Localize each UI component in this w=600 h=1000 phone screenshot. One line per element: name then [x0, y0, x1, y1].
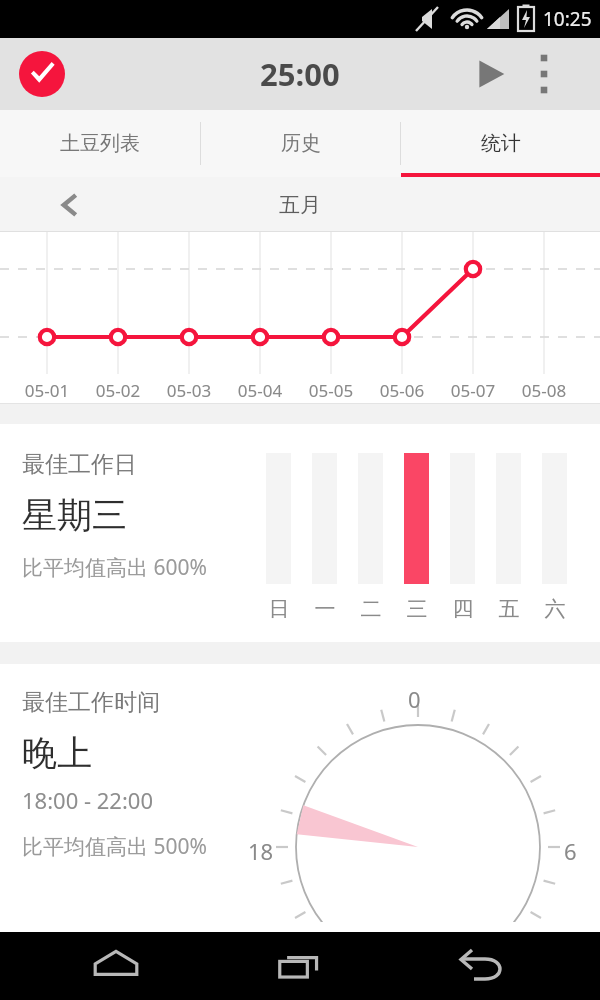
button[interactable]: 统计 — [401, 110, 600, 177]
staticText: 18:00 - 22:00 — [22, 785, 153, 815]
staticText: 05-04 — [230, 379, 290, 402]
staticText: 历史 — [281, 131, 321, 156]
button[interactable]: Recent apps — [272, 938, 328, 994]
staticText: 星期三 — [22, 493, 127, 537]
staticText: 六 — [533, 596, 577, 622]
staticText: 一 — [303, 596, 347, 622]
staticText: 土豆列表 — [60, 131, 140, 156]
staticText: 05-05 — [301, 379, 361, 402]
staticText: 0 — [408, 684, 421, 714]
button[interactable]: 土豆列表 — [0, 110, 200, 177]
staticText: 05-02 — [88, 379, 148, 402]
button[interactable]: Start timer — [464, 50, 512, 98]
staticText: 比平均值高出 500% — [22, 832, 207, 861]
staticText: 二 — [349, 596, 393, 622]
button[interactable]: More options — [522, 52, 566, 96]
staticText: 五月 — [279, 192, 321, 218]
staticText: 日 — [257, 596, 301, 622]
staticText: 05-08 — [514, 379, 574, 402]
staticText: 统计 — [481, 131, 521, 156]
staticText: 18 — [248, 836, 274, 866]
staticText: 晚上 — [22, 731, 92, 775]
staticText: 四 — [441, 596, 485, 622]
staticText: 最佳工作日 — [22, 450, 137, 479]
staticText: 最佳工作时间 — [22, 688, 160, 717]
button[interactable]: Previous month — [48, 183, 92, 227]
button[interactable]: 历史 — [201, 110, 400, 177]
staticText: 比平均值高出 600% — [22, 553, 207, 582]
staticText: 05-01 — [17, 379, 77, 402]
staticText: 05-03 — [159, 379, 219, 402]
button[interactable]: Back — [456, 938, 512, 994]
staticText: 五 — [487, 596, 531, 622]
button[interactable]: Home — [88, 938, 144, 994]
staticText: 6 — [564, 836, 577, 866]
staticText: 10:25 — [543, 6, 592, 32]
staticText: 三 — [395, 596, 439, 622]
staticText: 25:00 — [260, 53, 340, 95]
staticText: 05-06 — [372, 379, 432, 402]
staticText: 05-07 — [443, 379, 503, 402]
button[interactable]: App logo — [19, 51, 65, 97]
